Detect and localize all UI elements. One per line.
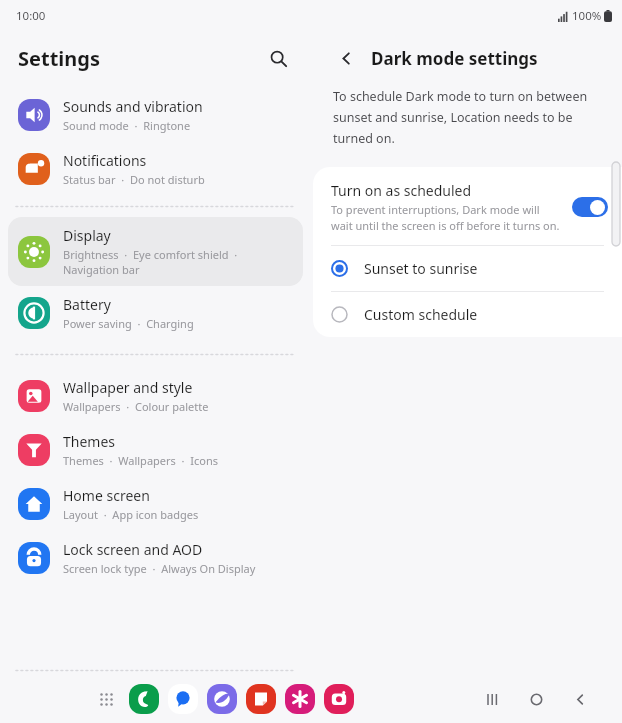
staticText: Screen lock type · Always On Display <box>63 561 256 576</box>
staticText: Themes <box>63 432 116 451</box>
staticText: 10:00 <box>16 8 46 24</box>
staticText: Sound mode · Ringtone <box>63 118 191 133</box>
staticText: Wallpaper and style <box>63 378 193 397</box>
button[interactable]: Home <box>514 677 558 721</box>
button[interactable]: Internet <box>207 684 237 714</box>
button[interactable]: Notifications <box>8 142 303 196</box>
button[interactable]: Turn on as scheduled <box>313 167 622 245</box>
staticText: Wallpapers · Colour palette <box>63 399 209 414</box>
staticText: Home screen <box>63 486 150 505</box>
button[interactable]: Gallery <box>285 684 315 714</box>
button[interactable]: Back <box>333 45 359 71</box>
staticText: Sounds and vibration <box>63 97 203 116</box>
button[interactable]: Sounds and vibration <box>8 88 303 142</box>
staticText: Display <box>63 226 111 245</box>
staticText: To prevent interruptions, Dark mode will… <box>331 202 562 233</box>
button[interactable]: Camera <box>324 684 354 714</box>
staticText: To schedule Dark mode to turn on between… <box>333 88 588 147</box>
button[interactable]: Apps <box>92 685 120 713</box>
button[interactable]: Battery <box>8 286 303 340</box>
staticText: Lock screen and AOD <box>63 540 203 559</box>
button[interactable]: Messages <box>168 684 198 714</box>
staticText: Dark mode settings <box>371 47 538 70</box>
staticText: Layout · App icon badges <box>63 507 199 522</box>
staticText: Turn on as scheduled <box>331 181 472 200</box>
button[interactable]: Lock screen and AOD <box>8 531 303 585</box>
staticText: Power saving · Charging <box>63 316 194 331</box>
button[interactable]: Recents <box>470 677 514 721</box>
button[interactable]: Home screen <box>8 477 303 531</box>
staticText: Battery <box>63 295 111 314</box>
button[interactable]: Phone <box>129 684 159 714</box>
button[interactable]: Turn on as scheduled toggle <box>572 197 608 217</box>
staticText: Themes · Wallpapers · Icons <box>63 453 218 468</box>
button[interactable]: Custom schedule <box>313 292 622 337</box>
button[interactable]: Themes <box>8 423 303 477</box>
button[interactable]: Search <box>263 43 293 73</box>
button[interactable]: Wallpaper and style <box>8 369 303 423</box>
button[interactable]: Display <box>8 217 303 286</box>
staticText: Notifications <box>63 151 147 170</box>
button[interactable]: Back <box>558 677 602 721</box>
button[interactable]: Sunset to sunrise <box>313 246 622 291</box>
button[interactable]: Notes <box>246 684 276 714</box>
staticText: 100% <box>572 8 602 24</box>
staticText: Settings <box>18 45 100 72</box>
staticText: Sunset to sunrise <box>364 259 478 278</box>
staticText: Custom schedule <box>364 305 478 324</box>
staticText: Status bar · Do not disturb <box>63 172 205 187</box>
staticText: Brightness · Eye comfort shield · Naviga… <box>63 247 238 277</box>
